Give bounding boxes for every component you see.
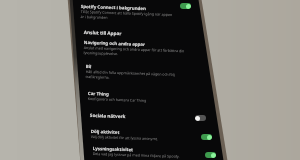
button[interactable]: Anslut till Appar [84, 29, 179, 38]
button[interactable]: Lyssningsaktivitet [205, 152, 216, 158]
staticText: Spotify Connect i bakgrunden [81, 3, 146, 11]
staticText: Tillåt Spotify Connect att hålla Spotify… [80, 9, 176, 22]
button[interactable]: Spotify Connect i bakgrunden [80, 3, 176, 22]
staticText: Dölj aktivitet [91, 128, 120, 135]
button[interactable]: Sociala nätverk [90, 112, 185, 121]
button[interactable]: Dölj aktivitet [201, 134, 212, 140]
staticText: Car Thing [88, 90, 109, 97]
staticText: Håll alltid din fulla uppmärksamhet på v… [85, 69, 192, 82]
staticText: Bil [86, 63, 92, 69]
button[interactable]: Dölj aktivitet [91, 128, 191, 142]
button[interactable]: Sociala nätverk [195, 115, 206, 121]
staticText: Sociala nätverk [90, 112, 126, 119]
button[interactable]: Bil [85, 63, 192, 82]
staticText: Navigering och andra appar [84, 39, 146, 47]
staticText: Konfigurera och hantera Car Thing [88, 96, 147, 103]
button[interactable]: Navigering och andra appar [83, 39, 190, 58]
staticText: Välj dölj aktivitet för att lyssna anony… [91, 134, 159, 141]
button[interactable]: Car Thing [88, 90, 188, 104]
button[interactable]: Lyssningsaktivitet [93, 145, 193, 159]
staticText: Anslut till Appar [84, 29, 122, 36]
button[interactable]: Spotify Connect i bakgrunden [180, 3, 191, 9]
staticText: Anslut med navigering och andra appar fö… [83, 45, 190, 58]
staticText: Lyssningsaktivitet [93, 145, 134, 152]
staticText: Dela vad jag lyssnar på med mina följare… [93, 151, 180, 159]
